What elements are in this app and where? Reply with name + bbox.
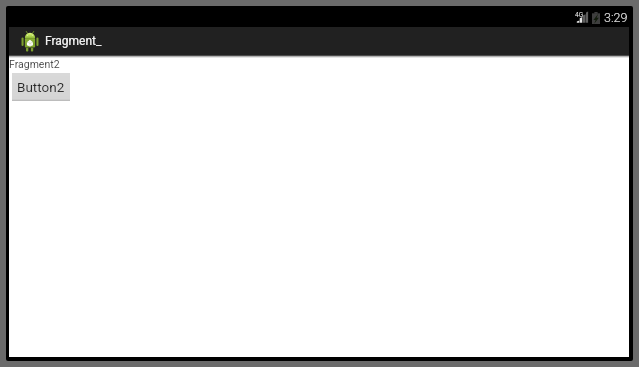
staticText: Button2 [17, 79, 65, 95]
staticText: Fragment_ [45, 34, 102, 48]
staticText: 4G [575, 11, 584, 19]
other: Mobile signal 4G [575, 11, 589, 23]
button[interactable]: App icon [21, 27, 102, 55]
other: App icon [21, 31, 39, 52]
staticText: 3:29 [604, 10, 628, 25]
button[interactable]: Button2 [12, 73, 70, 101]
staticText: Fragment2 [9, 58, 60, 70]
other: Battery charging [592, 12, 600, 24]
